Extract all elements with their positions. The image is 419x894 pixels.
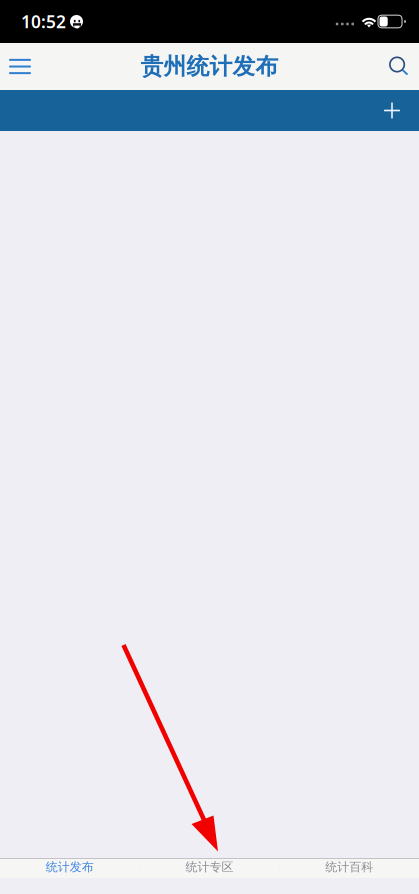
button[interactable]: Menu (0, 44, 42, 88)
staticText: 贵州统计发布 (140, 53, 278, 80)
button[interactable]: 统计发布 (0, 859, 140, 878)
button[interactable]: 统计百科 (279, 859, 419, 878)
staticText: 统计专区 (185, 860, 233, 874)
button[interactable]: Search (377, 44, 419, 88)
button[interactable]: 统计专区 (140, 859, 279, 878)
staticText: 10:52 (21, 10, 66, 33)
staticText: 统计发布 (46, 860, 94, 874)
button[interactable]: Add (371, 90, 413, 131)
staticText: 统计百科 (325, 860, 373, 874)
